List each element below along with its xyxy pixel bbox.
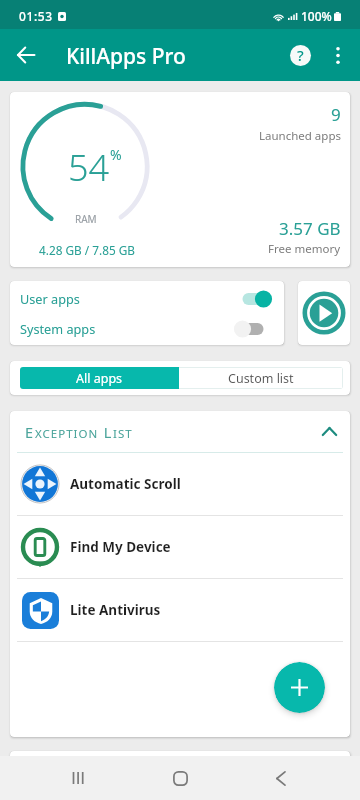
staticText: 54 bbox=[68, 143, 110, 192]
button[interactable]: Find My Device bbox=[10, 516, 350, 578]
staticText: XCEPTION bbox=[35, 426, 99, 442]
button[interactable]: More options bbox=[318, 35, 358, 75]
staticText: RAM bbox=[75, 212, 97, 226]
button[interactable]: All apps bbox=[20, 367, 179, 389]
staticText: 4.28 GB / 7.85 GB bbox=[39, 242, 135, 258]
button[interactable]: Back bbox=[256, 756, 304, 800]
button[interactable]: Back bbox=[6, 35, 46, 75]
staticText: System apps bbox=[20, 320, 96, 337]
staticText: ? bbox=[297, 45, 304, 65]
staticText: Launched apps bbox=[259, 128, 341, 144]
button[interactable]: User apps bbox=[10, 288, 284, 309]
staticText: IST bbox=[113, 426, 133, 442]
button[interactable]: Help bbox=[280, 35, 320, 75]
staticText: Custom list bbox=[228, 370, 294, 387]
staticText: KillApps Pro bbox=[66, 42, 186, 71]
button[interactable]: Automatic Scroll bbox=[10, 453, 350, 515]
staticText: Automatic Scroll bbox=[70, 475, 181, 493]
button[interactable]: Kill apps bbox=[298, 281, 350, 345]
staticText: 3.57 GB bbox=[279, 217, 341, 240]
button[interactable]: Add app bbox=[274, 662, 325, 713]
staticText: L bbox=[99, 422, 113, 442]
staticText: 01:53 bbox=[19, 8, 53, 24]
staticText: % bbox=[110, 145, 122, 164]
button[interactable]: Custom list bbox=[179, 368, 342, 388]
staticText: Find My Device bbox=[70, 538, 171, 556]
button[interactable]: System apps bbox=[10, 318, 284, 339]
staticText: Free memory bbox=[268, 241, 341, 257]
button[interactable]: E bbox=[10, 411, 350, 452]
button[interactable]: Home bbox=[156, 756, 204, 800]
staticText: User apps bbox=[20, 290, 80, 307]
staticText: Lite Antivirus bbox=[70, 601, 161, 619]
button[interactable]: Lite Antivirus bbox=[10, 579, 350, 641]
button[interactable]: Recents bbox=[55, 756, 103, 800]
staticText: All apps bbox=[76, 370, 123, 387]
staticText: 100% bbox=[301, 8, 332, 24]
staticText: 9 bbox=[331, 103, 341, 126]
other: Collapse bbox=[322, 427, 337, 436]
staticText: E bbox=[25, 422, 35, 442]
